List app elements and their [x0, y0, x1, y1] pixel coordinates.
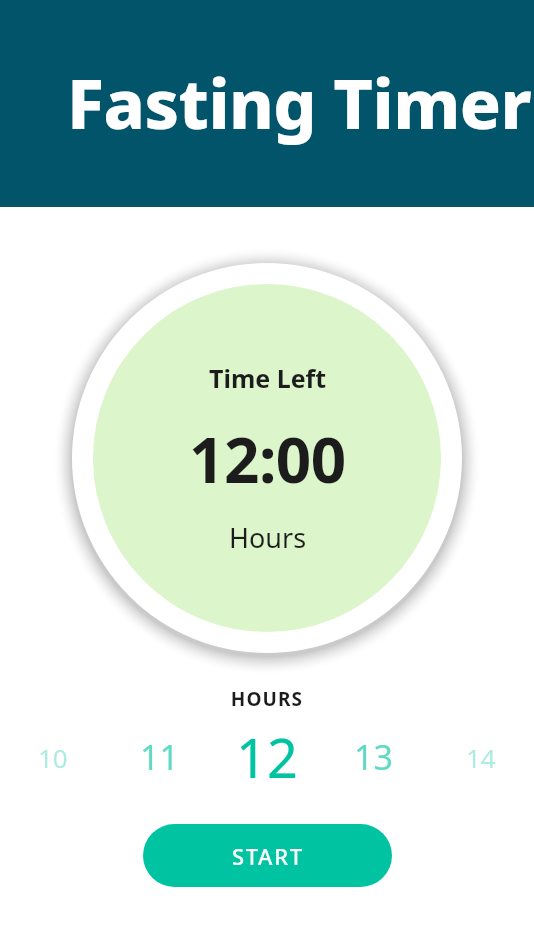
staticText: 12 — [236, 720, 298, 794]
staticText: Hours — [229, 519, 307, 556]
button[interactable]: 10 — [0, 718, 106, 796]
staticText: Time Left — [209, 361, 327, 395]
button[interactable]: 13 — [320, 718, 427, 796]
button[interactable]: START — [143, 824, 392, 887]
staticText: Fasting Timer — [67, 56, 532, 149]
button[interactable]: 12 — [213, 718, 320, 796]
staticText: START — [232, 841, 304, 871]
button[interactable]: 11 — [106, 718, 213, 796]
staticText: 14 — [466, 740, 496, 775]
staticText: HOURS — [0, 686, 534, 712]
staticText: 12:00 — [189, 417, 346, 501]
staticText: 13 — [354, 734, 393, 780]
button[interactable]: 14 — [427, 718, 534, 796]
staticText: 10 — [38, 740, 68, 775]
staticText: 11 — [140, 734, 179, 780]
